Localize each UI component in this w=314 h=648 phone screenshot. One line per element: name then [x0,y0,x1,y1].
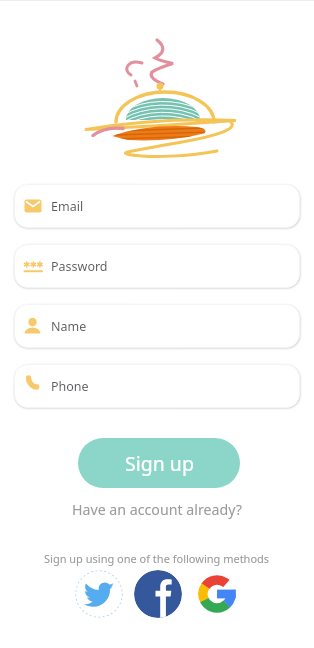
button[interactable] [134,570,182,618]
button[interactable]: Phone [14,364,300,408]
button[interactable]: Have an account already? [0,499,314,519]
button[interactable]: Name [14,304,300,348]
button[interactable]: Password [14,244,300,288]
button[interactable] [193,570,241,618]
staticText: Sign up using one of the following metho… [44,551,270,566]
staticText: Password [51,258,108,275]
staticText: Sign up [125,450,194,477]
staticText: Name [51,318,87,335]
staticText: Phone [51,378,89,395]
button[interactable]: Sign up [78,438,240,488]
button[interactable]: Email [14,184,300,228]
staticText: Have an account already? [72,500,242,519]
button[interactable] [75,570,123,618]
staticText: Email [51,198,84,215]
